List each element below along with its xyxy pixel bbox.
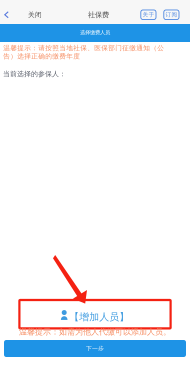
staticText: 选择缴费人员 <box>80 29 110 36</box>
staticText: 关于 <box>142 11 154 18</box>
button[interactable]: 订阅 <box>164 10 179 19</box>
button[interactable]: 【增加人员】 <box>0 300 190 328</box>
staticText: 【增加人员】 <box>69 311 129 323</box>
staticText: 当前选择的参保人： <box>3 70 66 78</box>
staticText: 告）选择正确的缴费年度 <box>3 52 80 61</box>
staticText: 关闭 <box>28 11 42 19</box>
staticText: 温馨提示：如需为他人代缴可以添加人员。 <box>19 327 171 337</box>
button[interactable]: 关于 <box>141 10 156 19</box>
staticText: 社保费 <box>88 10 109 19</box>
staticText: 下一步 <box>86 345 104 352</box>
staticText: 温馨提示：请按照当地社保、医保部门征缴通知（公 <box>3 44 164 52</box>
button[interactable]: 下一步 <box>0 340 190 357</box>
button[interactable]: 关闭 <box>0 3 48 26</box>
staticText: 订阅 <box>165 11 177 18</box>
